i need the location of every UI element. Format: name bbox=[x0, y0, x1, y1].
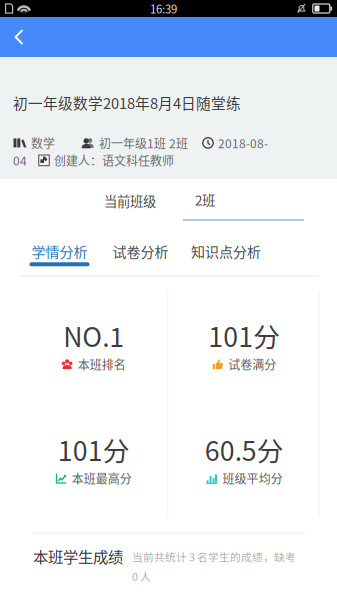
staticText: NO.1 bbox=[63, 316, 124, 355]
staticText: 当前共统计 3 名学生的成绩，缺考 0 人 bbox=[132, 549, 296, 584]
staticText: 2班 bbox=[195, 190, 215, 209]
staticText: 当前班级 bbox=[104, 191, 156, 210]
staticText: 60.5分 bbox=[205, 430, 284, 469]
staticText: 101分 bbox=[208, 316, 280, 355]
staticText: 初一年级1班 2班 bbox=[99, 134, 188, 152]
staticText: 本班学生成绩 bbox=[33, 545, 123, 567]
button[interactable]: 学情分析 bbox=[19, 241, 100, 271]
staticText: 2018-08- bbox=[218, 134, 268, 152]
staticText: 本班最高分 bbox=[72, 470, 132, 487]
staticText: 本班排名 bbox=[78, 356, 126, 373]
staticText: 班级平均分 bbox=[223, 470, 283, 487]
button[interactable]: Back bbox=[0, 17, 38, 57]
staticText: 04 bbox=[13, 152, 27, 169]
staticText: 数学 bbox=[31, 134, 55, 152]
staticText: 知识点分析 bbox=[191, 241, 261, 261]
staticText: 试卷满分 bbox=[228, 356, 276, 373]
staticText: 初一年级数学2018年8月4日随堂练 bbox=[13, 92, 241, 113]
staticText: 学情分析 bbox=[31, 241, 87, 261]
button[interactable]: 知识点分析 bbox=[181, 241, 271, 271]
staticText: 16:39 bbox=[150, 0, 177, 17]
button[interactable]: 试卷分析 bbox=[100, 241, 181, 271]
staticText: 试卷分析 bbox=[112, 241, 168, 261]
staticText: 101分 bbox=[58, 430, 130, 469]
button[interactable]: 2班 bbox=[0, 190, 304, 222]
staticText: 创建人：语文科任教师 bbox=[54, 152, 174, 169]
